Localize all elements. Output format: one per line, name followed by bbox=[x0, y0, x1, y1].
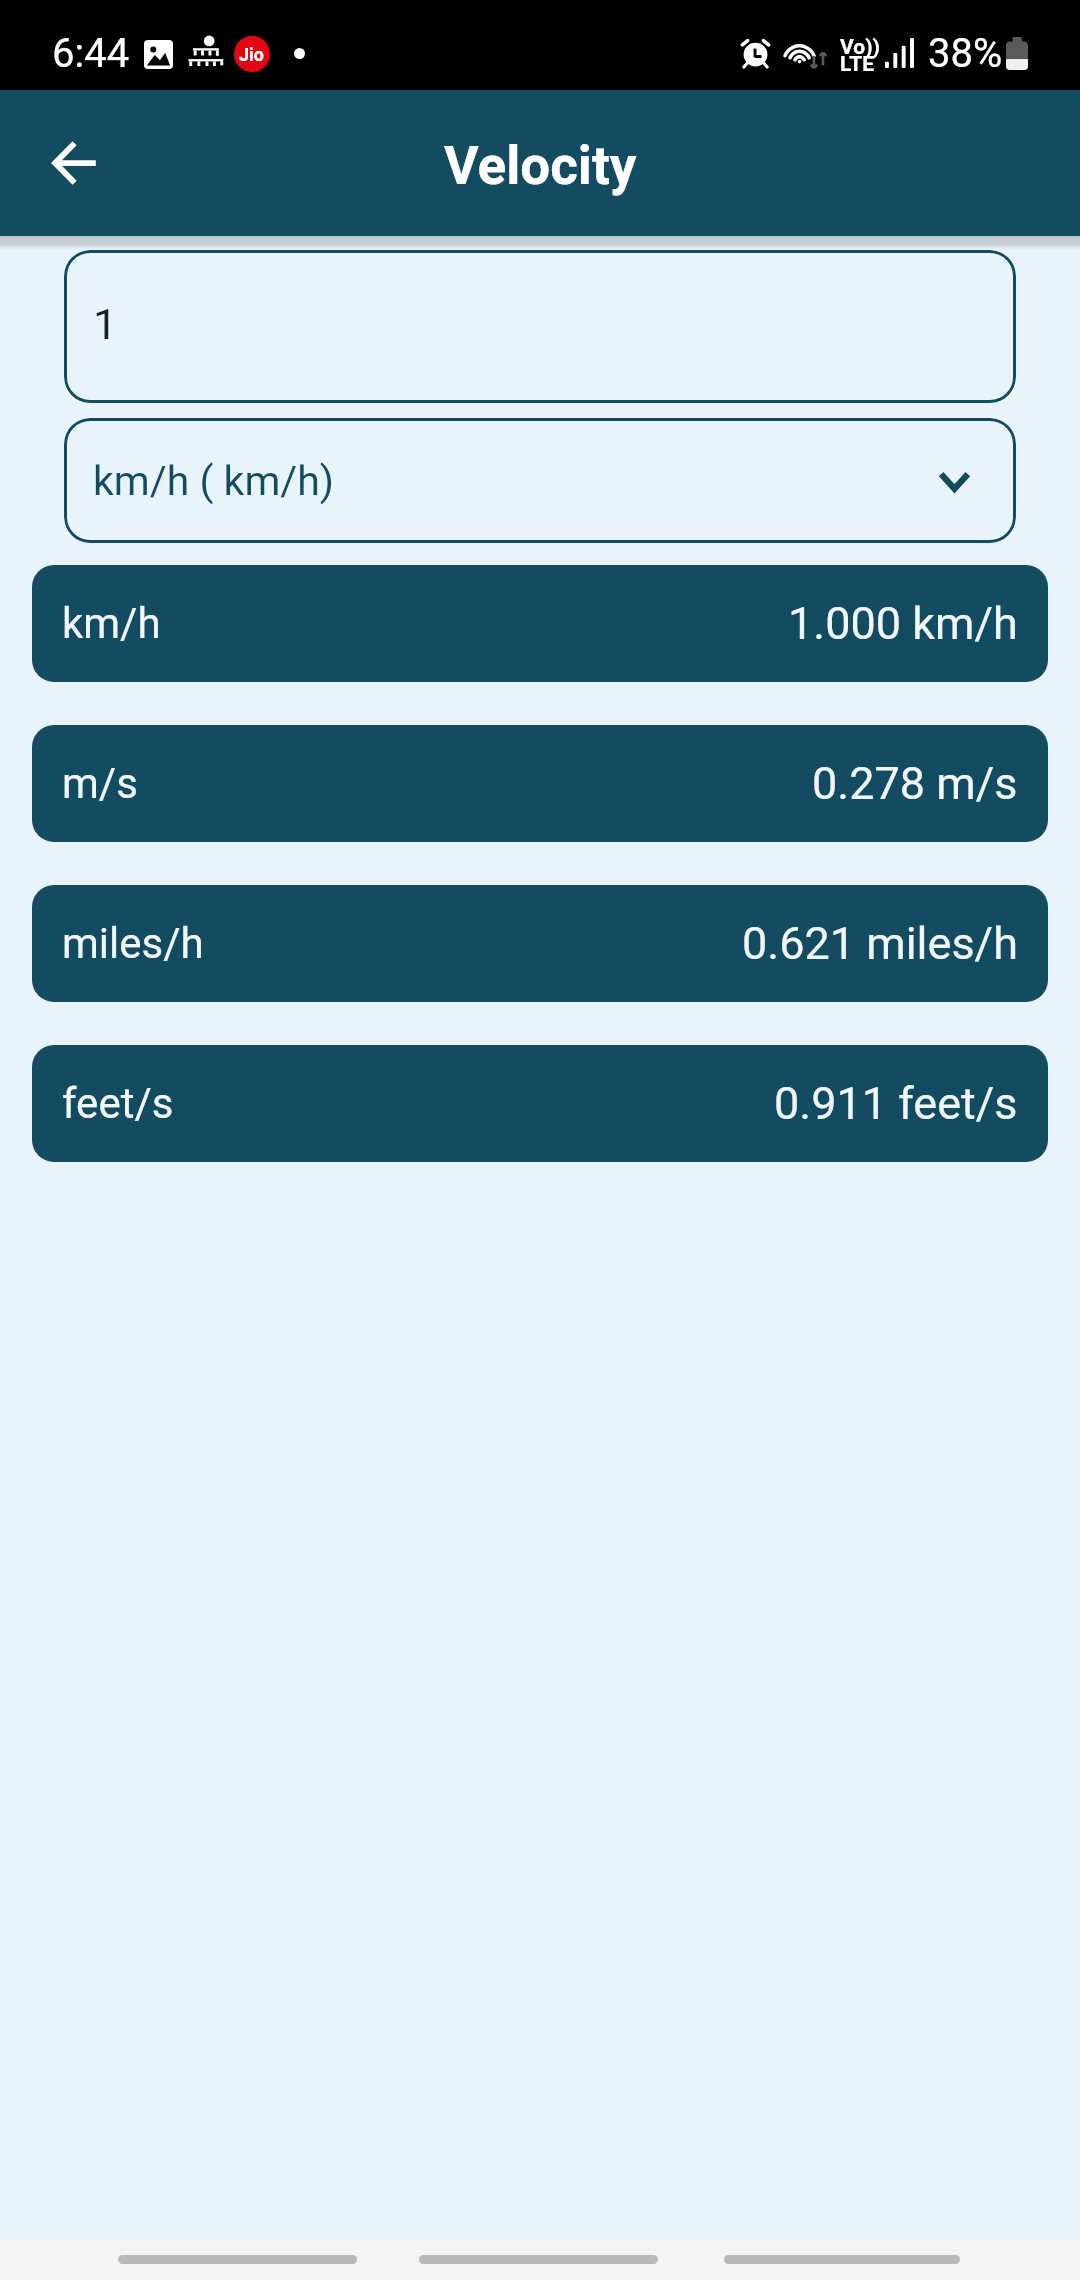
button[interactable]: km/h bbox=[32, 565, 1048, 682]
staticText: 1.000 km/h bbox=[788, 597, 1018, 650]
button[interactable]: feet/s bbox=[32, 1045, 1048, 1162]
button[interactable]: Back bbox=[29, 116, 123, 210]
staticText: LTE bbox=[840, 52, 875, 77]
button[interactable]: 1 bbox=[64, 250, 1016, 403]
staticText: Velocity bbox=[444, 135, 637, 197]
staticText: miles/h bbox=[62, 919, 204, 968]
staticText: km/h ( km/h) bbox=[93, 457, 335, 505]
staticText: 38% bbox=[928, 30, 1003, 77]
button[interactable]: System navigation bbox=[419, 2255, 658, 2264]
staticText: 6:44 bbox=[52, 30, 130, 77]
staticText: 0.911 feet/s bbox=[774, 1077, 1018, 1130]
staticText: Vo)) bbox=[840, 35, 880, 60]
staticText: km/h bbox=[62, 599, 161, 648]
button[interactable]: System navigation bbox=[118, 2255, 357, 2264]
staticText: Jio bbox=[239, 44, 265, 65]
staticText: feet/s bbox=[62, 1079, 174, 1128]
staticText: 1 bbox=[93, 299, 118, 349]
button[interactable]: miles/h bbox=[32, 885, 1048, 1002]
button[interactable]: m/s bbox=[32, 725, 1048, 842]
staticText: m/s bbox=[62, 759, 138, 808]
staticText: 0.621 miles/h bbox=[742, 917, 1018, 970]
staticText: 0.278 m/s bbox=[812, 757, 1018, 810]
button[interactable]: Open unit list bbox=[925, 452, 983, 510]
button[interactable]: System navigation bbox=[724, 2255, 960, 2264]
button[interactable]: km/h ( km/h) bbox=[64, 418, 1016, 543]
